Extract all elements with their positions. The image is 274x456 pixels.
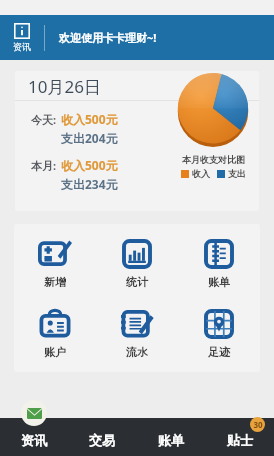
button[interactable]: 统计 [96,228,178,298]
staticText: 10月26日 [28,75,101,98]
staticText: 收入500元 [61,157,118,173]
button[interactable]: 流水 [96,298,178,368]
staticText: 收入500元 [61,111,118,127]
staticText: 收入 [192,168,210,179]
staticText: 足迹 [208,345,230,359]
button[interactable]: 新增 [14,228,96,298]
button[interactable]: 账单 [178,228,260,298]
staticText: 本月: [31,158,57,173]
staticText: 交易 [89,432,115,448]
button[interactable]: 账单 [136,418,205,456]
staticText: 支出234元 [61,176,118,192]
staticText: 本月收支对比图 [182,154,245,165]
staticText: 欢迎使用卡卡理财~! [59,30,157,45]
staticText: 30 [253,419,263,430]
button[interactable]: 交易 [68,418,136,456]
staticText: 账单 [208,275,230,289]
staticText: 资讯 [13,41,31,52]
staticText: 支出 [228,168,246,179]
staticText: 统计 [126,275,148,289]
button[interactable]: 资讯 [0,418,68,456]
staticText: 今天: [31,112,57,127]
button[interactable]: 足迹 [178,298,260,368]
staticText: 资讯 [21,432,47,448]
button[interactable]: 10月26日 [15,71,259,211]
staticText: 账户 [44,345,66,359]
button[interactable]: 资讯 Information [0,15,44,60]
staticText: 账单 [158,432,184,448]
button[interactable]: 账户 [14,298,96,368]
staticText: 贴士 [227,432,253,448]
staticText: 流水 [126,345,148,359]
button[interactable]: 贴士 [205,418,274,456]
staticText: 支出204元 [61,130,118,146]
staticText: 新增 [44,275,66,289]
